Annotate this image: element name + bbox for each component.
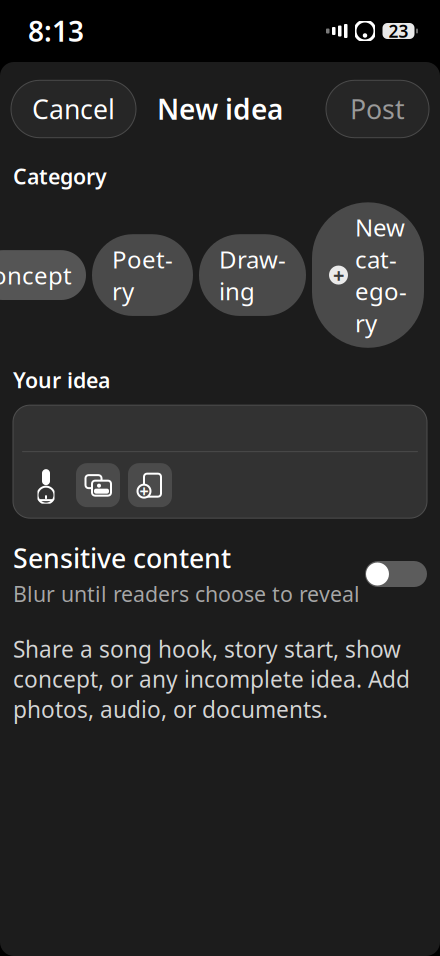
button[interactable]: Cancel [11, 80, 136, 138]
staticText: Post [350, 91, 405, 127]
staticText: New category [355, 211, 407, 339]
button[interactable]: Add document [128, 463, 172, 507]
button[interactable]: Post [326, 80, 429, 138]
button[interactable]: Drawing [199, 234, 306, 316]
staticText: Drawing [219, 243, 286, 307]
staticText: 23 [388, 19, 408, 42]
staticText: New idea [157, 90, 283, 128]
button[interactable]: Add photos [76, 463, 120, 507]
staticText: Category [13, 162, 107, 190]
staticText: Share a song hook, story start, show con… [13, 634, 410, 724]
staticText: 8:13 [28, 12, 84, 50]
staticText: Your idea [13, 366, 110, 394]
staticText: + [139, 480, 148, 502]
button[interactable]: Sensitive content [0, 518, 440, 608]
button[interactable]: + [312, 202, 424, 348]
button[interactable]: Record audio [24, 463, 68, 507]
button[interactable]: Poetry [92, 234, 193, 316]
staticText: Cancel [32, 91, 115, 127]
staticText: Blur until readers choose to reveal [13, 580, 360, 608]
staticText: Sensitive content [13, 540, 231, 575]
staticText: Poetry [112, 243, 173, 307]
staticText: oncept [0, 259, 72, 291]
staticText: + [333, 262, 344, 288]
